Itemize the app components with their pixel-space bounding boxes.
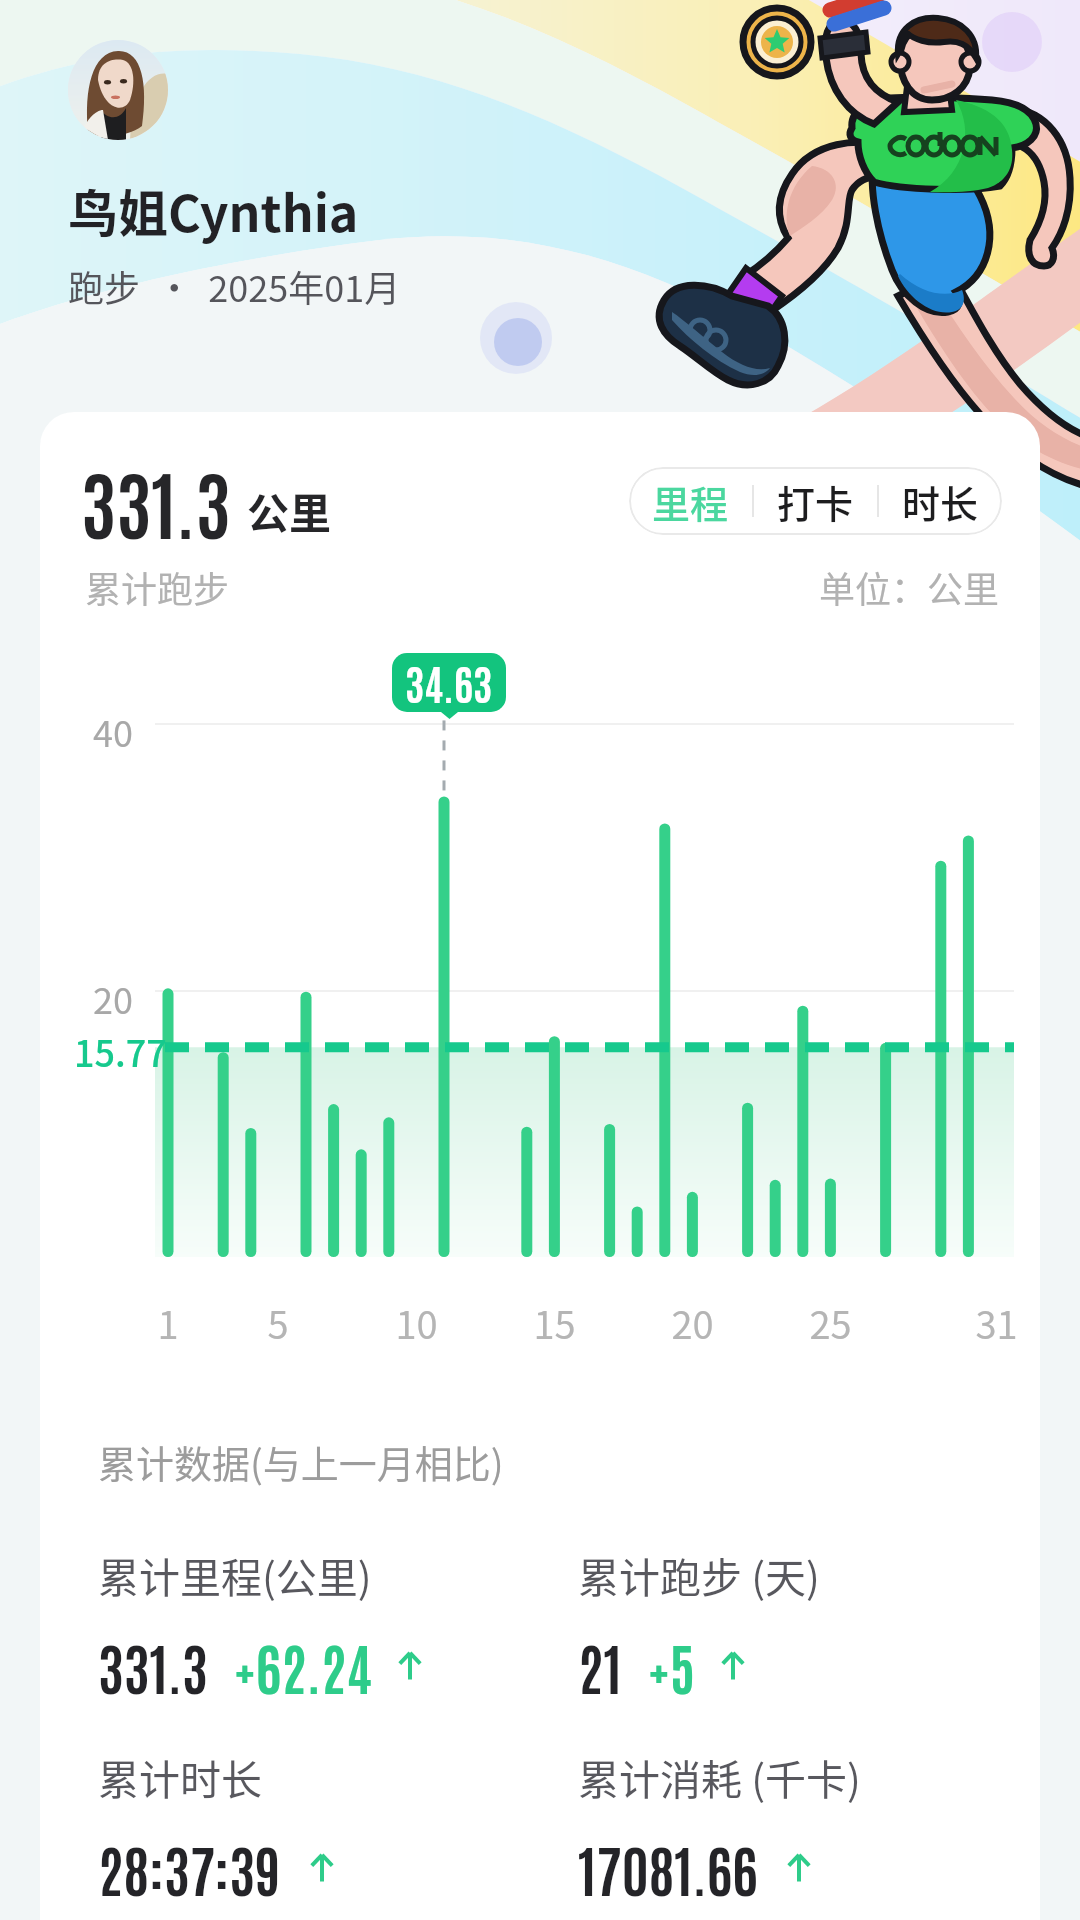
staticText: 20 — [93, 972, 133, 1024]
staticText: 时长 — [902, 474, 979, 529]
staticText: 里程 — [652, 474, 729, 529]
staticText: 累计跑步 (天) — [578, 1545, 820, 1604]
staticText: 打卡 — [777, 474, 854, 529]
staticText: 34.63 — [405, 656, 493, 709]
staticText: 17081.66 — [578, 1832, 758, 1903]
staticText: 20 — [671, 1295, 714, 1350]
button[interactable]: 时长 — [879, 467, 1002, 535]
staticText: 28:37:39 — [98, 1832, 281, 1903]
staticText: 累计时长 — [98, 1747, 262, 1806]
staticText: 跑步 · 2025年01月 — [68, 260, 401, 312]
staticText: 331.3 — [81, 452, 231, 549]
staticText: +5 — [648, 1630, 696, 1701]
button[interactable]: 打卡 — [754, 467, 877, 535]
staticText: 累计里程(公里) — [98, 1545, 372, 1604]
staticText: 15 — [533, 1295, 576, 1350]
staticText: 鸟姐Cynthia — [68, 174, 359, 246]
staticText: 15.77 — [74, 1025, 167, 1077]
staticText: 10 — [395, 1295, 438, 1350]
staticText: +62.24 — [234, 1630, 373, 1701]
staticText: 公里 — [247, 480, 332, 541]
staticText: 累计跑步 — [85, 561, 230, 613]
staticText: 331.3 — [98, 1630, 208, 1701]
staticText: 1 — [157, 1295, 179, 1350]
staticText: 31 — [975, 1295, 1018, 1350]
staticText: 25 — [809, 1295, 852, 1350]
staticText: 单位：公里 — [819, 561, 1000, 613]
button[interactable]: Profile avatar — [68, 40, 168, 140]
staticText: 累计数据(与上一月相比) — [98, 1434, 504, 1489]
staticText: 累计消耗 (千卡) — [578, 1747, 861, 1806]
button[interactable]: 里程 — [629, 467, 752, 535]
staticText: 40 — [93, 705, 133, 757]
staticText: 21 — [578, 1630, 622, 1701]
staticText: 5 — [267, 1295, 289, 1350]
